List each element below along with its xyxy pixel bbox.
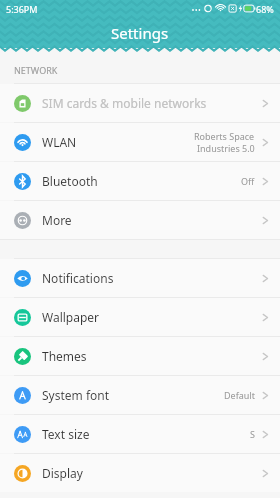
staticText: Roberts Space bbox=[194, 130, 255, 142]
button[interactable]: WLAN bbox=[0, 123, 280, 161]
staticText: Themes bbox=[42, 348, 87, 364]
button[interactable]: Display bbox=[0, 454, 280, 492]
staticText: NETWORK bbox=[14, 64, 58, 76]
staticText: Default bbox=[224, 389, 255, 401]
staticText: Settings bbox=[111, 23, 169, 43]
staticText: Bluetooth bbox=[42, 173, 98, 189]
staticText: S bbox=[250, 428, 255, 440]
button[interactable]: Bluetooth bbox=[0, 162, 280, 200]
staticText: Industries 5.0 bbox=[197, 142, 255, 154]
staticText: Text size bbox=[42, 426, 90, 442]
button[interactable]: Text size bbox=[0, 415, 280, 453]
staticText: WLAN bbox=[42, 134, 77, 150]
staticText: SIM cards & mobile networks bbox=[42, 95, 207, 111]
staticText: Wallpaper bbox=[42, 309, 100, 325]
staticText: Off bbox=[241, 175, 255, 187]
button[interactable]: Themes bbox=[0, 337, 280, 375]
button[interactable]: SIM cards & mobile networks bbox=[0, 84, 280, 122]
staticText: Notifications bbox=[42, 270, 114, 286]
button[interactable]: Wallpaper bbox=[0, 298, 280, 336]
staticText: 68% bbox=[256, 3, 274, 15]
staticText: More bbox=[42, 212, 72, 228]
staticText: Display bbox=[42, 465, 83, 481]
button[interactable]: More bbox=[0, 201, 280, 239]
staticText: 5:36PM bbox=[6, 3, 38, 15]
staticText: System font bbox=[42, 387, 110, 403]
button[interactable]: System font bbox=[0, 376, 280, 414]
button[interactable]: Notifications bbox=[0, 259, 280, 297]
